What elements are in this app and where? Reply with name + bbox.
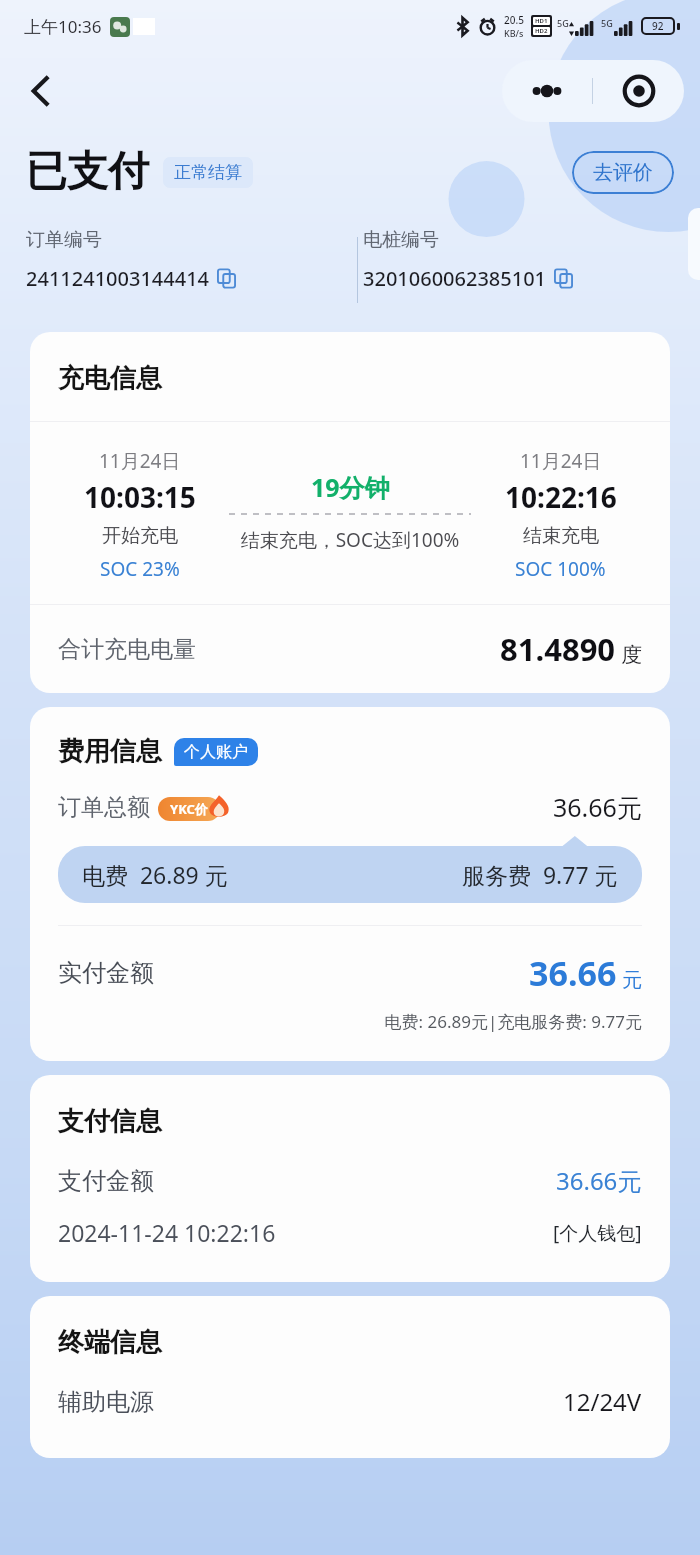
staticText: 结束充电，SOC达到100%	[229, 527, 471, 553]
staticText: 辅助电源	[58, 1387, 154, 1417]
staticText: HD1	[535, 17, 548, 25]
staticText: SOC 100%	[515, 556, 606, 582]
staticText: 服务费 9.77 元	[462, 859, 618, 890]
staticText: 费用信息	[58, 735, 162, 768]
staticText: 电费 26.89 元	[82, 859, 228, 890]
staticText: 个人账户	[184, 742, 248, 762]
staticText: 上午10:36	[24, 15, 102, 38]
staticText: 元	[622, 968, 642, 993]
staticText: 11月24日	[99, 448, 181, 474]
other: Copy	[554, 269, 573, 288]
staticText: 正常结算	[174, 162, 242, 183]
staticText: KB/s	[504, 27, 524, 39]
staticText: 合计充电电量	[58, 635, 196, 664]
staticText: 2024-11-24 10:22:16	[58, 1217, 276, 1248]
staticText: 12/24V	[563, 1385, 642, 1418]
button[interactable]: Close	[593, 60, 684, 122]
staticText: 电费: 26.89元|充电服务费: 9.77元	[30, 1010, 642, 1033]
staticText: 36.66元	[556, 1164, 642, 1197]
staticText: 81.4890	[500, 628, 616, 670]
staticText: 20.5	[504, 13, 524, 27]
staticText: 支付信息	[58, 1105, 162, 1138]
staticText: 终端信息	[58, 1326, 162, 1359]
staticText: [个人钱包]	[553, 1220, 642, 1246]
staticText: 10:22:16	[505, 478, 617, 516]
button[interactable]: Back	[18, 67, 66, 115]
staticText: 2411241003144414	[26, 265, 210, 292]
staticText: 3201060062385101	[363, 265, 547, 292]
button[interactable]: More options	[502, 60, 592, 122]
staticText: YKC价	[170, 800, 208, 818]
staticText: 19分钟	[311, 470, 390, 504]
staticText: 5G	[601, 17, 613, 29]
staticText: 实付金额	[58, 958, 154, 988]
staticText: 36.66	[529, 950, 617, 996]
staticText: 11月24日	[520, 448, 602, 474]
staticText: 开始充电	[102, 524, 178, 548]
staticText: 已支付	[26, 146, 149, 198]
staticText: 36.66元	[553, 790, 642, 824]
staticText: 去评价	[593, 160, 653, 185]
staticText: 充电信息	[58, 362, 162, 395]
staticText: 结束充电	[523, 524, 599, 548]
staticText: 92	[652, 19, 664, 33]
staticText: 支付金额	[58, 1166, 154, 1196]
button[interactable]: 3201060062385101	[363, 265, 573, 292]
staticText: HD2	[535, 27, 548, 35]
other: Copy	[217, 269, 236, 288]
staticText: SOC 23%	[100, 556, 180, 582]
staticText: 5G	[557, 17, 569, 29]
staticText: 10:03:15	[84, 478, 196, 516]
staticText: 电桩编号	[363, 228, 439, 252]
staticText: 订单总额	[58, 793, 150, 822]
button[interactable]: 2411241003144414	[26, 265, 236, 292]
button[interactable]: 去评价	[572, 151, 674, 194]
staticText: 度	[621, 642, 642, 668]
staticText: 订单编号	[26, 228, 102, 252]
